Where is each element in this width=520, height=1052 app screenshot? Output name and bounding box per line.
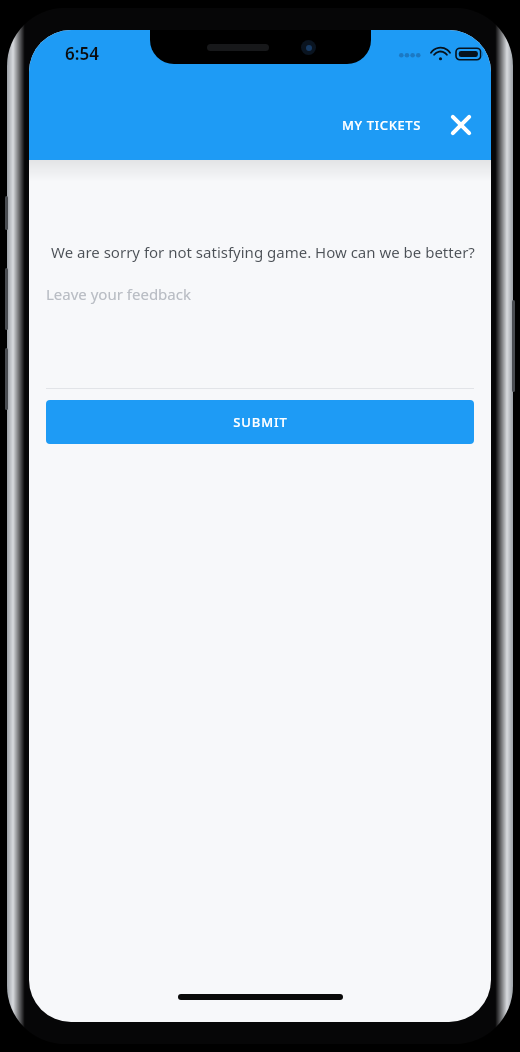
- staticText: 6:54: [65, 42, 99, 65]
- button[interactable]: Leave your feedback: [29, 280, 491, 388]
- button[interactable]: MY TICKETS: [334, 108, 429, 142]
- button[interactable]: SUBMIT: [46, 400, 474, 444]
- staticText: SUBMIT: [233, 413, 288, 431]
- button[interactable]: Close: [441, 105, 481, 145]
- staticText: Leave your feedback: [46, 284, 191, 304]
- staticText: MY TICKETS: [342, 116, 421, 134]
- staticText: We are sorry for not satisfying game. Ho…: [51, 242, 475, 262]
